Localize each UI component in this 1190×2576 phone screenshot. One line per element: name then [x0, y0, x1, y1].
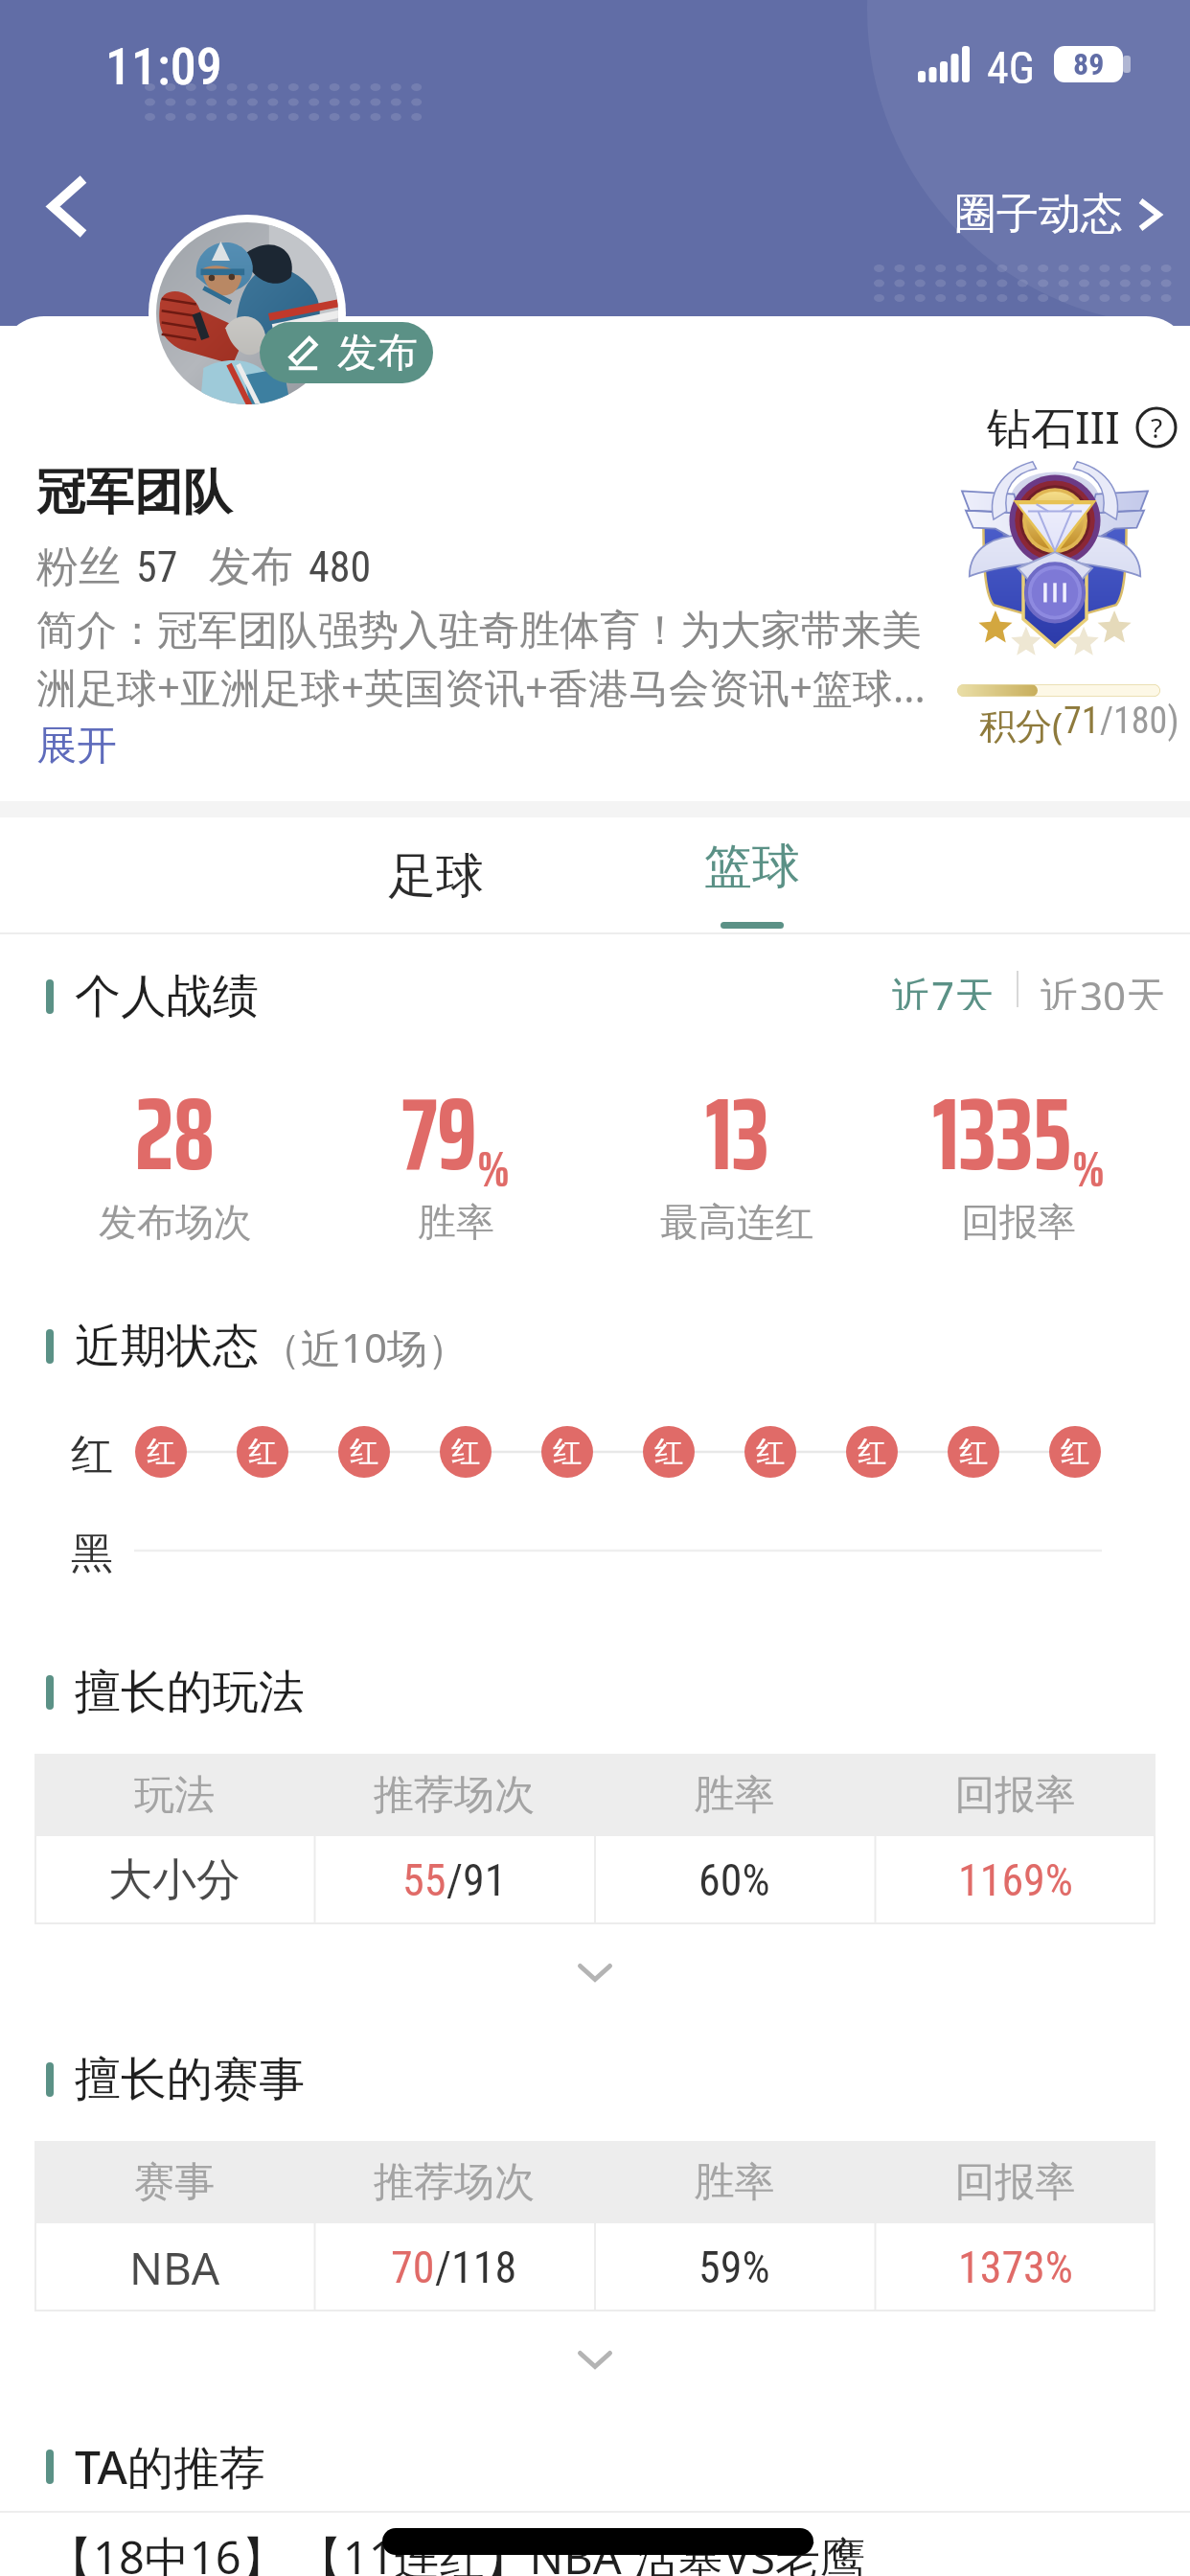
staticText: 红 [71, 1429, 113, 1482]
staticText: 回报率 [875, 2157, 1156, 2208]
staticText: 玩法 [34, 1770, 314, 1821]
staticText: 480 [309, 542, 372, 592]
staticText: （近10场） [261, 1320, 469, 1374]
staticText: 71 [1064, 700, 1100, 743]
staticText: 4G [987, 42, 1035, 94]
button[interactable]: 简介：冠军团队强势入驻奇胜体育！为大家带来美洲足球+亚洲足球+英国资讯+香港马会… [36, 606, 931, 771]
staticText: 近30天 [1040, 968, 1167, 1010]
staticText: /180) [1100, 700, 1179, 743]
button[interactable]: 红 [846, 1426, 898, 1478]
staticText: 1169% [958, 1854, 1073, 1906]
staticText: 79 [401, 1054, 477, 1214]
button[interactable]: 近30天 [1040, 968, 1167, 1010]
staticText: 近7天 [891, 968, 995, 1010]
button[interactable]: 篮球 [656, 817, 848, 934]
button[interactable]: Expand more [0, 2334, 1190, 2384]
staticText: 篮球 [704, 837, 800, 897]
staticText: TA的推荐 [75, 2435, 266, 2498]
staticText: 发布 [337, 328, 418, 379]
staticText: 近期状态 [75, 1318, 259, 1375]
staticText: 圈子动态 [954, 188, 1123, 241]
staticText: ? [1151, 409, 1163, 446]
staticText: 【18中16】 【11连红】NBA 活塞VS老鹰 [48, 2526, 866, 2576]
staticText: 1373% [958, 2242, 1073, 2293]
button[interactable]: 红 [744, 1426, 796, 1478]
staticText: 红 [654, 1434, 683, 1470]
staticText: % [1072, 1130, 1105, 1208]
staticText: 红 [756, 1434, 785, 1470]
staticText: 13 [705, 1054, 769, 1214]
staticText: 70 [391, 2242, 435, 2293]
staticText: 最高连红 [660, 1198, 813, 1246]
staticText: 11:09 [105, 36, 222, 97]
staticText: 55 [402, 1854, 446, 1906]
button[interactable]: 红 [338, 1426, 390, 1478]
button[interactable]: 【18中16】 【11连红】NBA 活塞VS老鹰 [48, 2526, 1190, 2576]
staticText: NBA [129, 2238, 220, 2298]
staticText: 胜率 [418, 1198, 494, 1246]
staticText: 59% [698, 2242, 770, 2293]
staticText: 钻石III [987, 397, 1120, 457]
staticText: 足球 [388, 846, 484, 907]
staticText: 回报率 [961, 1198, 1076, 1246]
button[interactable]: 28 [34, 1054, 315, 1262]
staticText: 红 [858, 1434, 886, 1470]
button[interactable]: Back [17, 149, 119, 263]
staticText: 擅长的玩法 [75, 1664, 305, 1721]
staticText: 胜率 [594, 1770, 875, 1821]
staticText: 冠军团队 [36, 462, 232, 523]
staticText: 回报率 [875, 1770, 1156, 1821]
staticText: 胜率 [594, 2157, 875, 2208]
button[interactable]: Expand more [0, 1947, 1190, 1997]
button[interactable]: 足球 [340, 817, 532, 934]
staticText: 黑 [71, 1528, 113, 1580]
staticText: 57 [136, 542, 178, 592]
button[interactable]: 1335 [878, 1054, 1159, 1262]
staticText: 红 [1061, 1434, 1089, 1470]
staticText: 发布场次 [99, 1198, 252, 1246]
button[interactable]: 红 [237, 1426, 288, 1478]
staticText: 擅长的赛事 [75, 2051, 305, 2108]
staticText: 红 [248, 1434, 277, 1470]
staticText: 1335 [932, 1054, 1072, 1214]
staticText: 积分( [979, 700, 1064, 749]
staticText: 28 [135, 1054, 215, 1214]
staticText: 89 [1073, 46, 1105, 82]
button[interactable]: 13 [596, 1054, 878, 1262]
staticText: 红 [451, 1434, 480, 1470]
button[interactable]: 圈子动态 [949, 182, 1167, 246]
staticText: 赛事 [34, 2157, 314, 2208]
button[interactable]: 红 [135, 1426, 187, 1478]
staticText: 红 [147, 1434, 175, 1470]
staticText: 红 [553, 1434, 582, 1470]
staticText: 发布 [209, 540, 293, 593]
staticText: 红 [350, 1434, 378, 1470]
button[interactable]: 红 [440, 1426, 492, 1478]
button[interactable]: 79 [315, 1054, 596, 1262]
button[interactable]: 近7天 [891, 968, 995, 1010]
staticText: 推荐场次 [314, 1770, 594, 1821]
staticText: 大小分 [108, 1852, 240, 1908]
staticText: 60% [698, 1854, 770, 1906]
staticText: /91 [446, 1854, 507, 1906]
staticText: 个人战绩 [75, 968, 259, 1025]
staticText: 红 [959, 1434, 988, 1470]
button[interactable]: 红 [541, 1426, 593, 1478]
staticText: /118 [435, 2242, 517, 2293]
button[interactable]: Rank info [987, 397, 1178, 457]
button[interactable]: 红 [643, 1426, 695, 1478]
staticText: % [477, 1130, 510, 1208]
staticText: 粉丝 [36, 540, 121, 593]
staticText: 推荐场次 [314, 2157, 594, 2208]
button[interactable]: 红 [1049, 1426, 1101, 1478]
button[interactable]: Profile avatar [156, 222, 338, 404]
button[interactable]: 发布 [260, 322, 433, 383]
button[interactable]: 红 [948, 1426, 999, 1478]
